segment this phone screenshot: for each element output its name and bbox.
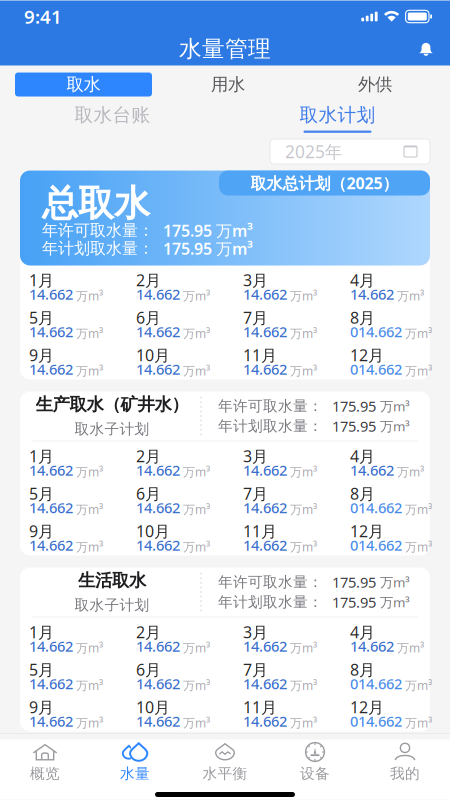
staticText: 14.662 [243, 284, 287, 304]
button[interactable]: 水平衡 [180, 740, 270, 784]
staticText: 万m³ [405, 501, 432, 517]
staticText: 9月 [29, 520, 54, 542]
staticText: 取水计划 [299, 103, 375, 126]
button[interactable]: 我的 [360, 740, 450, 784]
staticText: 11月 [243, 344, 277, 366]
staticText: 14.662 [29, 322, 73, 341]
staticText: 014.662 [350, 498, 402, 517]
staticText: 175.95 [332, 416, 376, 436]
staticText: 年计划取水量： [218, 593, 323, 611]
staticText: 14.662 [243, 460, 287, 480]
staticText: 水量 [120, 764, 150, 782]
staticText: 年计划取水量： [42, 239, 154, 258]
staticText: 3月 [243, 269, 268, 291]
staticText: 万m³ [76, 715, 103, 731]
staticText: 年许可取水量： [42, 221, 154, 240]
button[interactable]: 概览 [0, 740, 90, 784]
staticText: 万m³ [183, 363, 210, 379]
button[interactable]: 取水台账 [0, 103, 225, 136]
staticText: 万m³ [76, 325, 103, 341]
staticText: 取水子计划 [74, 420, 149, 438]
staticText: 2月 [136, 621, 161, 643]
staticText: 万m³ [397, 288, 424, 304]
staticText: 14.662 [136, 460, 180, 480]
staticText: 175.95 [332, 592, 376, 612]
staticText: 水量管理 [179, 35, 271, 63]
staticText: 万m³ [183, 640, 210, 656]
staticText: 14.662 [243, 636, 287, 656]
staticText: 14.662 [29, 359, 73, 379]
staticText: 万m³ [183, 539, 210, 555]
staticText: 5月 [29, 483, 54, 504]
staticText: 14.662 [136, 636, 180, 656]
staticText: 外供 [358, 74, 392, 95]
button[interactable]: 2025年 [270, 139, 430, 164]
staticText: 万m³ [183, 464, 210, 480]
staticText: 万m³ [376, 593, 410, 611]
staticText: 14.662 [136, 322, 180, 341]
button[interactable]: 通知 [410, 32, 442, 65]
button[interactable]: 取水 [0, 65, 156, 103]
button[interactable]: 设备 [270, 740, 360, 784]
staticText: 14.662 [136, 535, 180, 555]
staticText: 3月 [243, 445, 268, 467]
staticText: 取水 [66, 74, 100, 95]
staticText: 4月 [350, 269, 375, 291]
staticText: 14.662 [136, 674, 180, 693]
staticText: 万m³ [405, 539, 432, 555]
staticText: 8月 [350, 307, 375, 328]
staticText: 1月 [29, 269, 54, 291]
staticText: 14.662 [243, 535, 287, 555]
staticText: 万m³ [405, 715, 432, 731]
button[interactable]: 水量 [90, 740, 180, 784]
staticText: 用水 [211, 74, 245, 95]
staticText: 175.95 [332, 572, 376, 592]
staticText: 万m³ [183, 715, 210, 731]
staticText: 10月 [136, 344, 170, 366]
staticText: 生产取水（矿井水） [35, 394, 188, 415]
staticText: 万m³ [183, 325, 210, 341]
staticText: 014.662 [350, 359, 402, 379]
staticText: 2月 [136, 269, 161, 291]
staticText: 175.95 万m³ [163, 220, 253, 241]
staticText: 概览 [30, 764, 60, 782]
staticText: 175.95 [332, 396, 376, 416]
button[interactable]: 用水 [156, 65, 300, 103]
staticText: 2025年 [285, 140, 342, 163]
button[interactable]: 取水计划 [225, 103, 450, 136]
staticText: 14.662 [136, 498, 180, 517]
staticText: 水平衡 [202, 764, 247, 782]
staticText: 万m³ [290, 464, 317, 480]
staticText: 12月 [350, 344, 384, 366]
staticText: 取水子计划 [74, 596, 149, 614]
staticText: 14.662 [243, 711, 287, 731]
staticText: 5月 [29, 659, 54, 680]
staticText: 年计划取水量： [218, 417, 323, 435]
staticText: 万m³ [290, 677, 317, 693]
staticText: 10月 [136, 696, 170, 718]
staticText: 6月 [136, 659, 161, 680]
staticText: 14.662 [29, 711, 73, 731]
staticText: 万m³ [405, 325, 432, 341]
staticText: 14.662 [350, 460, 394, 480]
button[interactable]: 外供 [300, 65, 450, 103]
staticText: 9月 [29, 696, 54, 718]
staticText: 万m³ [376, 573, 410, 591]
staticText: 万m³ [290, 288, 317, 304]
staticText: 8月 [350, 483, 375, 504]
staticText: 万m³ [76, 464, 103, 480]
staticText: 万m³ [290, 363, 317, 379]
staticText: 014.662 [350, 535, 402, 555]
staticText: 万m³ [290, 539, 317, 555]
staticText: 万m³ [183, 288, 210, 304]
staticText: 万m³ [290, 715, 317, 731]
staticText: 取水台账 [74, 103, 150, 126]
staticText: 生活取水 [78, 570, 146, 591]
staticText: 设备 [300, 764, 330, 782]
staticText: 7月 [243, 483, 268, 504]
staticText: 1月 [29, 445, 54, 467]
staticText: 11月 [243, 520, 277, 542]
staticText: 万m³ [76, 640, 103, 656]
staticText: 014.662 [350, 711, 402, 731]
staticText: 3月 [243, 621, 268, 643]
